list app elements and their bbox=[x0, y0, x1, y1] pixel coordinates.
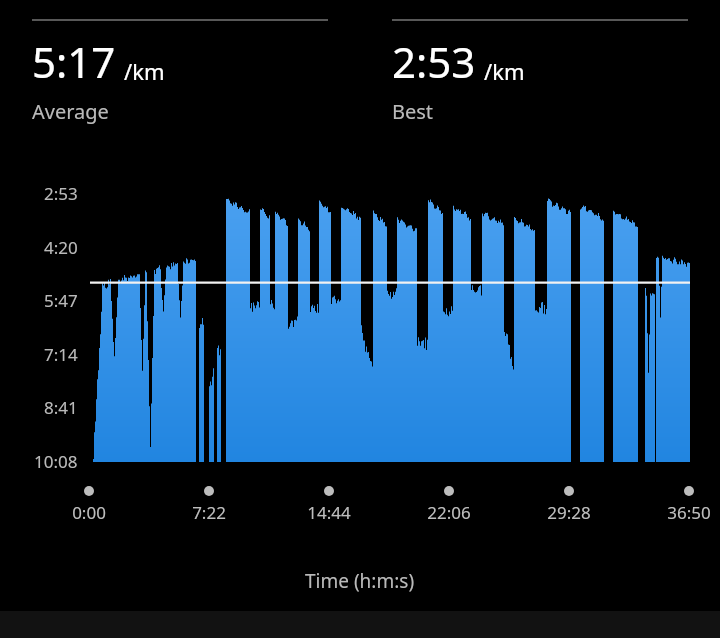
staticText: 5:47 bbox=[44, 289, 78, 312]
staticText: 7:22 bbox=[192, 501, 226, 524]
button[interactable]: 5:17 bbox=[0, 0, 360, 117]
staticText: 2:53 bbox=[44, 182, 78, 205]
staticText: 22:06 bbox=[427, 501, 471, 524]
staticText: /km bbox=[124, 56, 165, 86]
staticText: 2:53 bbox=[392, 33, 476, 90]
staticText: Best bbox=[392, 98, 434, 125]
staticText: 7:14 bbox=[44, 343, 78, 366]
staticText: 8:41 bbox=[44, 396, 78, 419]
button[interactable]: 2:53 bbox=[360, 0, 720, 117]
staticText: /km bbox=[484, 56, 525, 86]
staticText: 29:28 bbox=[547, 501, 591, 524]
staticText: 0:00 bbox=[72, 501, 106, 524]
staticText: Time (h:m:s) bbox=[305, 568, 415, 594]
staticText: 5:17 bbox=[32, 33, 116, 90]
staticText: 4:20 bbox=[44, 236, 78, 259]
staticText: 14:44 bbox=[307, 501, 351, 524]
staticText: Average bbox=[32, 98, 109, 125]
staticText: 10:08 bbox=[34, 450, 78, 473]
staticText: 36:50 bbox=[667, 501, 711, 524]
